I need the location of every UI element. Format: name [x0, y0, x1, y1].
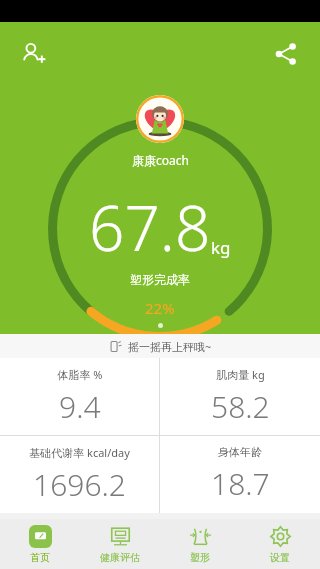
staticText: 塑形	[190, 551, 210, 564]
button[interactable]: 摇一摇再上秤哦~	[0, 334, 320, 358]
staticText: kg	[211, 236, 231, 259]
staticText: 身体年龄	[218, 445, 262, 459]
button[interactable]: 基础代谢率 kcal/day	[0, 436, 159, 513]
button[interactable]: 塑形	[160, 519, 240, 569]
staticText: 体脂率 %	[57, 367, 103, 382]
staticText: 肌肉量 kg	[216, 367, 265, 382]
staticText: 22%	[145, 298, 175, 318]
button[interactable]: Coach avatar	[136, 95, 184, 143]
button[interactable]: 身体年龄	[160, 436, 320, 513]
button[interactable]: 健康评估	[80, 519, 160, 569]
staticText: 设置	[270, 551, 290, 564]
staticText: 康康coach	[132, 152, 189, 168]
staticText: 首页	[30, 551, 50, 564]
staticText: 58.2	[211, 386, 270, 427]
button[interactable]: 首页	[0, 519, 80, 569]
staticText: 健康评估	[100, 551, 140, 564]
button[interactable]: 体脂率 %	[0, 358, 159, 435]
staticText: 基础代谢率 kcal/day	[29, 445, 130, 460]
button[interactable]: 设置	[240, 519, 320, 569]
button[interactable]: Add user	[14, 34, 54, 74]
staticText: 塑形完成率	[130, 272, 190, 287]
staticText: 18.7	[211, 463, 270, 504]
button[interactable]: Share	[266, 34, 306, 74]
button[interactable]: 肌肉量 kg	[160, 358, 320, 435]
staticText: 9.4	[59, 386, 101, 427]
staticText: 67.8	[89, 185, 211, 269]
staticText: 1696.2	[33, 464, 126, 505]
staticText: 摇一摇再上秤哦~	[128, 339, 212, 354]
